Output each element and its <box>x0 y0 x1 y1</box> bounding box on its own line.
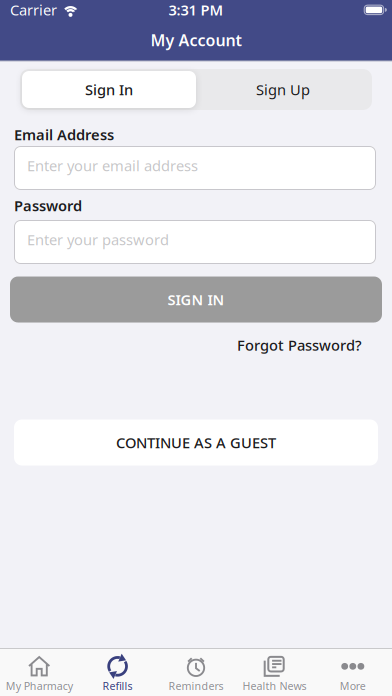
staticText: Health News <box>242 679 306 693</box>
staticText: 3:31 PM <box>168 0 223 20</box>
button[interactable]: Forgot Password? <box>237 335 362 355</box>
staticText: Forgot Password? <box>237 335 362 355</box>
button[interactable]: Health News <box>235 655 314 693</box>
button[interactable]: SIGN IN <box>10 276 382 322</box>
staticText: My Pharmacy <box>6 679 73 693</box>
staticText: Reminders <box>168 679 223 693</box>
staticText: Refills <box>103 679 133 693</box>
button[interactable]: Refills <box>78 655 157 693</box>
button[interactable]: Sign Up <box>196 80 370 99</box>
staticText: Carrier <box>10 0 57 20</box>
staticText: Enter your email address <box>27 156 198 175</box>
staticText: SIGN IN <box>167 290 224 309</box>
staticText: My Account <box>150 29 241 51</box>
staticText: Sign Up <box>256 80 310 99</box>
button[interactable]: My Pharmacy <box>0 655 78 693</box>
staticText: Sign In <box>85 80 133 99</box>
button[interactable]: Reminders <box>157 655 235 693</box>
staticText: CONTINUE AS A GUEST <box>116 433 276 452</box>
staticText: More <box>340 679 366 693</box>
staticText: Password <box>14 196 82 215</box>
button[interactable]: Sign In <box>22 71 196 108</box>
button[interactable]: CONTINUE AS A GUEST <box>14 419 378 465</box>
staticText: Email Address <box>14 125 114 144</box>
staticText: Enter your password <box>27 230 169 249</box>
button[interactable]: More <box>314 655 392 693</box>
